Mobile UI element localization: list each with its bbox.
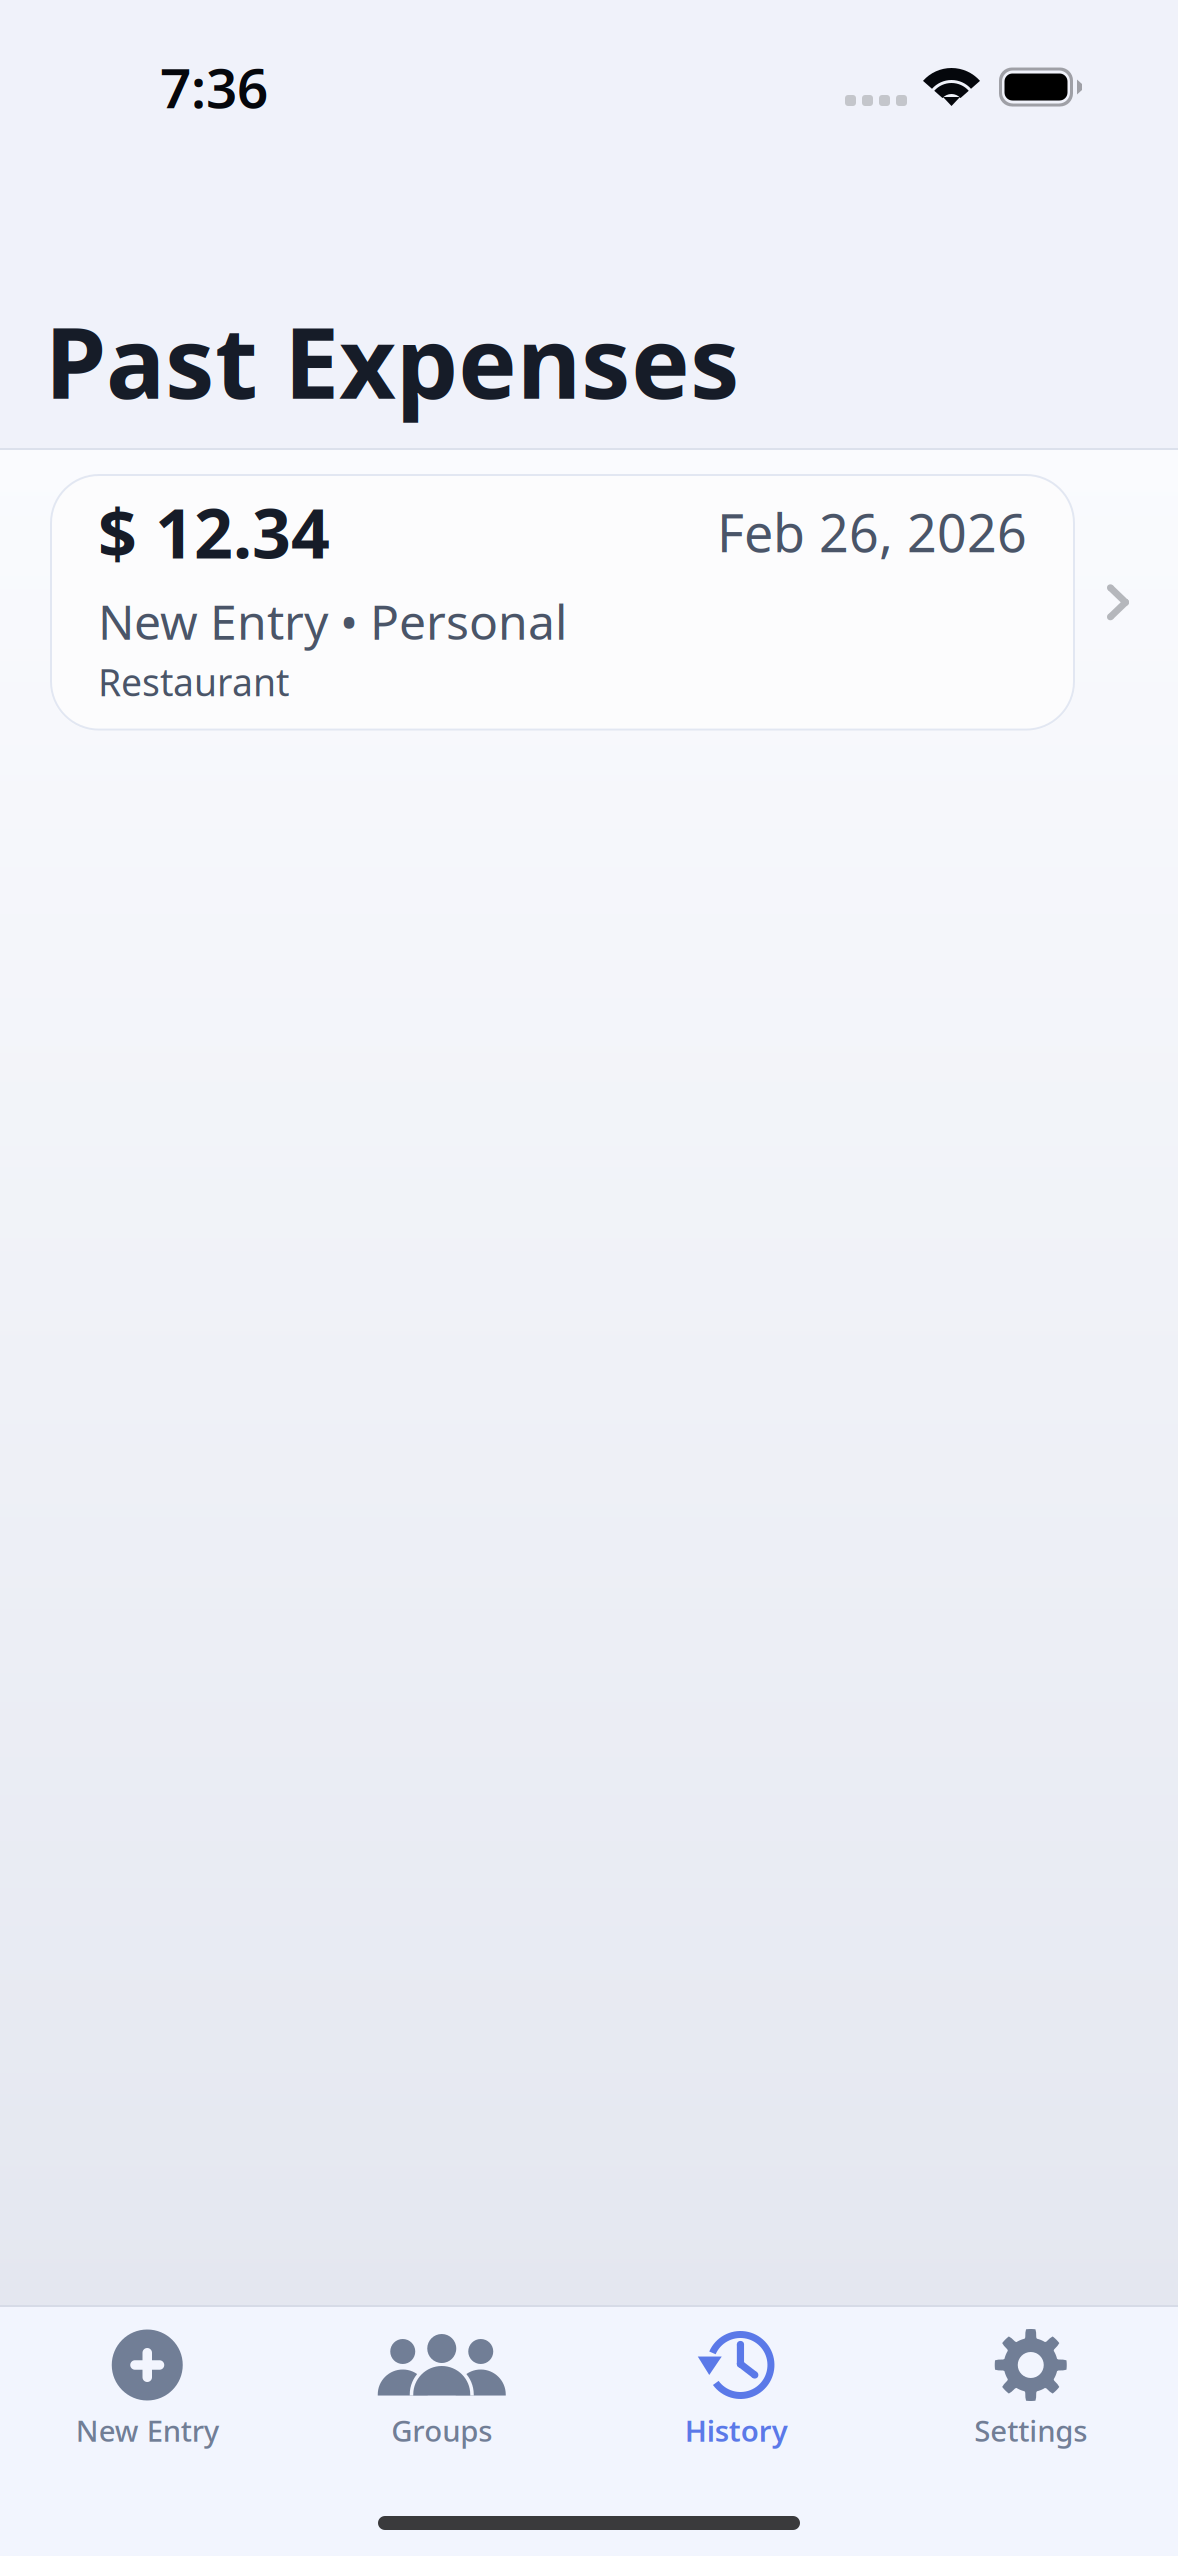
staticText: Restaurant bbox=[98, 657, 289, 707]
staticText: $ 12.34 bbox=[98, 487, 330, 577]
button[interactable]: New Entry bbox=[0, 2307, 294, 2462]
staticText: New Entry bbox=[76, 2411, 219, 2450]
button[interactable]: $ 12.34 bbox=[0, 474, 1178, 731]
staticText: Settings bbox=[974, 2411, 1087, 2450]
button[interactable]: Groups bbox=[294, 2307, 589, 2462]
staticText: History bbox=[685, 2411, 788, 2450]
staticText: Past Expenses bbox=[45, 295, 740, 426]
button[interactable]: Settings bbox=[883, 2307, 1178, 2462]
button[interactable]: History bbox=[589, 2307, 883, 2462]
staticText: Groups bbox=[391, 2411, 492, 2450]
staticText: 7:36 bbox=[160, 51, 268, 123]
staticText: New Entry • Personal bbox=[98, 589, 567, 653]
staticText: Feb 26, 2026 bbox=[717, 498, 1027, 567]
